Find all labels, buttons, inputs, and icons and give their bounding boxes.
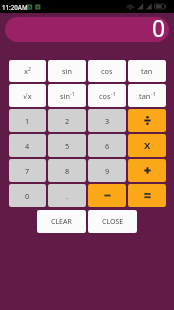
- button[interactable]: sin: [48, 60, 86, 82]
- staticText: X: [144, 139, 151, 152]
- staticText: .: [66, 191, 68, 201]
- button[interactable]: cos: [88, 84, 126, 107]
- staticText: tan: [141, 66, 153, 76]
- button[interactable]: 3: [88, 109, 126, 132]
- staticText: 11:20AM: [2, 3, 28, 11]
- button[interactable]: CLOSE: [88, 210, 137, 233]
- button[interactable]: 4: [9, 134, 46, 157]
- staticText: cos: [99, 91, 111, 101]
- button[interactable]: tan: [128, 84, 166, 107]
- button[interactable]: .: [48, 184, 86, 207]
- button[interactable]: 7: [9, 159, 46, 182]
- staticText: CLEAR: [51, 217, 72, 227]
- staticText: 2: [28, 65, 32, 72]
- staticText: 8: [65, 166, 70, 176]
- staticText: 5: [65, 141, 70, 151]
- staticText: 3: [105, 116, 110, 126]
- button[interactable]: Plus: [128, 159, 166, 182]
- staticText: -1: [111, 90, 116, 97]
- staticText: 4: [25, 141, 30, 151]
- button[interactable]: Divide: [128, 109, 166, 132]
- staticText: x: [24, 66, 28, 76]
- staticText: sin: [60, 91, 70, 101]
- staticText: 2: [65, 116, 70, 126]
- button[interactable]: 5: [48, 134, 86, 157]
- staticText: 7: [25, 166, 30, 176]
- staticText: tan: [139, 91, 151, 101]
- button[interactable]: CLEAR: [37, 210, 86, 233]
- staticText: cos: [101, 66, 113, 76]
- button[interactable]: sin: [48, 84, 86, 107]
- button[interactable]: √x: [9, 84, 46, 107]
- staticText: sin: [62, 66, 72, 76]
- staticText: 0: [25, 191, 30, 201]
- staticText: CLOSE: [102, 217, 124, 227]
- staticText: -1: [151, 90, 156, 97]
- button[interactable]: 9: [88, 159, 126, 182]
- button[interactable]: cos: [88, 60, 126, 82]
- button[interactable]: Minus: [88, 184, 126, 207]
- staticText: 0: [152, 17, 166, 37]
- button[interactable]: 0: [5, 17, 169, 42]
- button[interactable]: 1: [9, 109, 46, 132]
- button[interactable]: 2: [48, 109, 86, 132]
- button[interactable]: 6: [88, 134, 126, 157]
- button[interactable]: x: [9, 60, 46, 82]
- button[interactable]: 8: [48, 159, 86, 182]
- button[interactable]: Multiply: [128, 134, 166, 157]
- staticText: √x: [23, 91, 32, 101]
- staticText: -1: [70, 90, 75, 97]
- button[interactable]: 0: [9, 184, 46, 207]
- button[interactable]: tan: [128, 60, 166, 82]
- staticText: 6: [105, 141, 110, 151]
- staticText: 9: [105, 166, 110, 176]
- staticText: 1: [25, 116, 30, 126]
- button[interactable]: Equals: [128, 184, 166, 207]
